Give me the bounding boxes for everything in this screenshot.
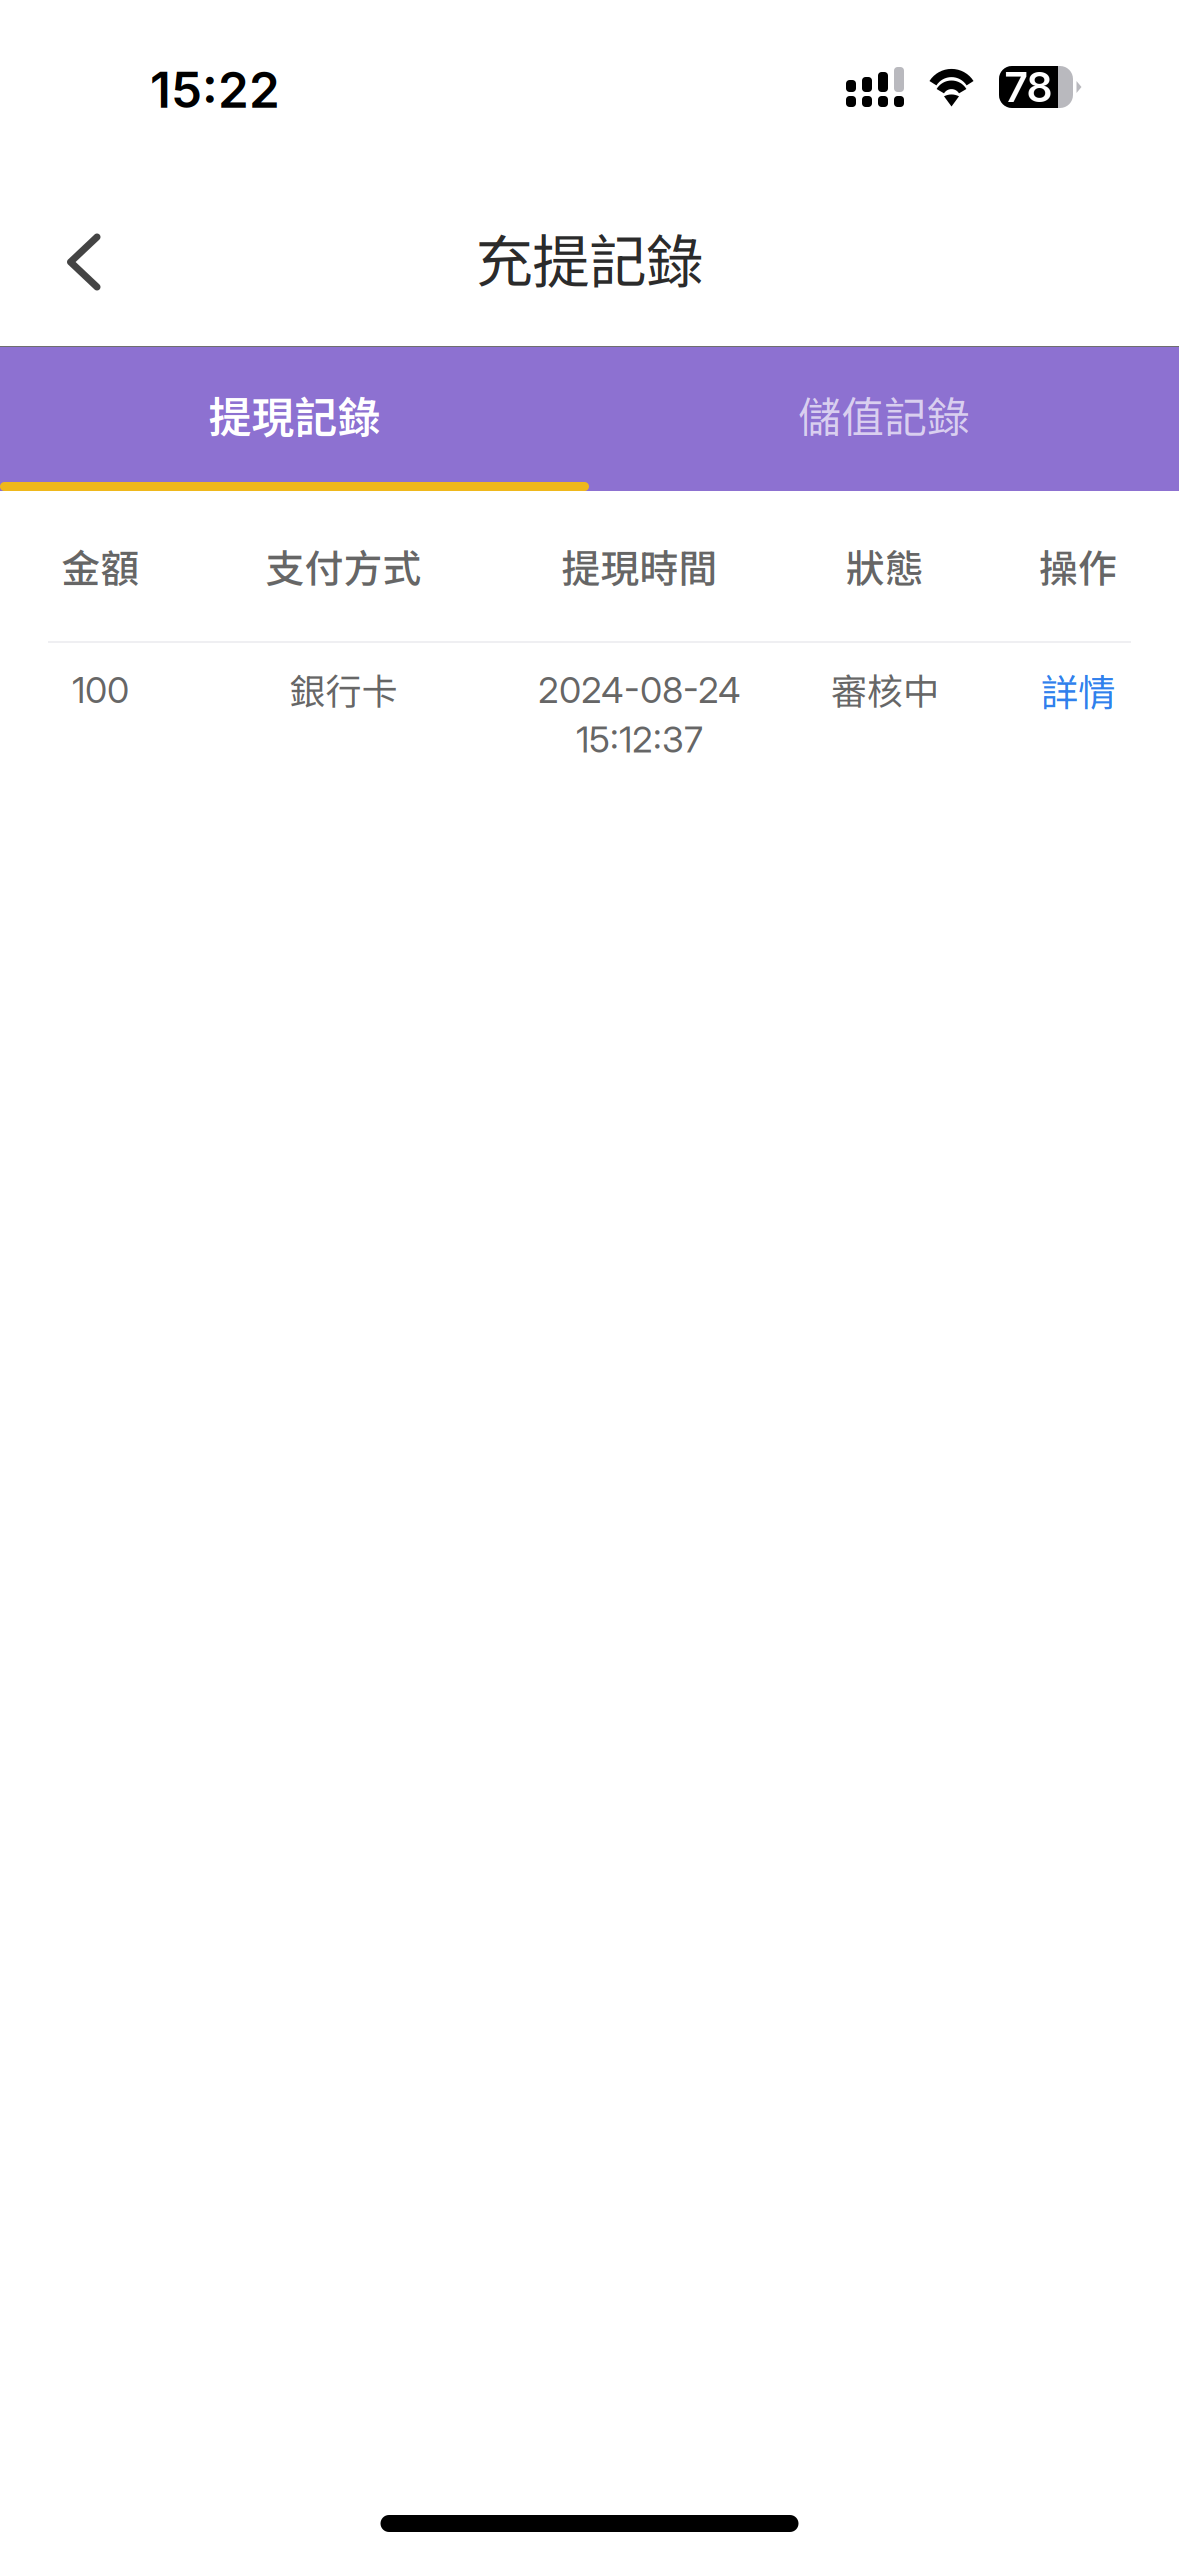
staticText: 支付方式	[265, 538, 421, 594]
staticText: 操作	[1039, 538, 1117, 594]
staticText: 2024-08-24	[538, 668, 741, 712]
staticText: 狀態	[846, 538, 924, 594]
staticText: 銀行卡	[289, 663, 397, 715]
staticText: 金額	[61, 538, 139, 594]
button[interactable]: 詳情	[977, 663, 1179, 735]
button[interactable]: 提現記錄	[0, 347, 589, 482]
staticText: 儲值記錄	[798, 384, 970, 445]
staticText: 15:22	[150, 60, 280, 120]
staticText: 100	[72, 668, 129, 712]
staticText: 提現記錄	[209, 384, 381, 445]
staticText: 審核中	[831, 663, 939, 715]
staticText: 詳情	[1041, 663, 1115, 717]
button[interactable]: 儲值記錄	[589, 347, 1179, 482]
staticText: 充提記錄	[475, 216, 703, 299]
staticText: 提現時間	[561, 538, 717, 594]
staticText: 78	[1005, 62, 1052, 112]
button[interactable]: Back	[32, 158, 164, 260]
staticText: 15:12:37	[576, 718, 703, 761]
